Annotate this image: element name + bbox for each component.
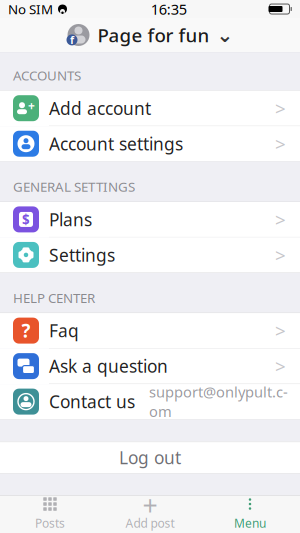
button[interactable]: Log out <box>0 442 300 474</box>
staticText: 16:35 <box>151 0 187 19</box>
staticText: > <box>275 354 286 378</box>
staticText: Page for fun <box>97 23 209 47</box>
staticText: HELP CENTER <box>13 289 95 307</box>
staticText: + <box>28 98 35 114</box>
button[interactable]: Posts <box>0 495 100 533</box>
staticText: > <box>275 96 286 121</box>
staticText: + <box>142 487 157 523</box>
staticText: > <box>275 242 286 267</box>
staticText: > <box>275 318 286 343</box>
staticText: Posts <box>35 515 65 531</box>
staticText: support@onlypult.com <box>149 382 288 421</box>
staticText: Log out <box>119 446 181 469</box>
button[interactable]: ? <box>0 313 300 349</box>
button[interactable]: f <box>56 18 243 52</box>
button[interactable]: Settings <box>0 237 300 273</box>
button[interactable]: Contact us <box>0 384 300 420</box>
staticText: Contact us <box>49 390 135 413</box>
staticText: GENERAL SETTINGS <box>13 178 135 195</box>
staticText: Menu <box>234 515 266 531</box>
button[interactable]: $ <box>0 202 300 237</box>
staticText: Account settings <box>49 132 183 155</box>
button[interactable]: Menu <box>200 495 300 533</box>
staticText: > <box>275 131 286 156</box>
staticText: ? <box>21 318 30 343</box>
staticText: f <box>70 33 74 47</box>
staticText: Add account <box>49 97 151 120</box>
staticText: Settings <box>49 243 115 266</box>
staticText: Add post <box>125 515 174 531</box>
button[interactable]: Account settings <box>0 126 300 162</box>
staticText: No SIM <box>8 0 53 18</box>
staticText: Ask a question <box>49 355 168 378</box>
button[interactable]: + <box>100 495 200 533</box>
button[interactable]: Ask a question <box>0 349 300 384</box>
staticText: Faq <box>49 319 79 342</box>
staticText: > <box>275 207 286 232</box>
staticText: ACCOUNTS <box>13 66 81 84</box>
button[interactable]: + <box>0 91 300 126</box>
staticText: ⌄ <box>216 24 233 46</box>
staticText: Plans <box>49 208 92 231</box>
staticText: $ <box>22 211 30 228</box>
